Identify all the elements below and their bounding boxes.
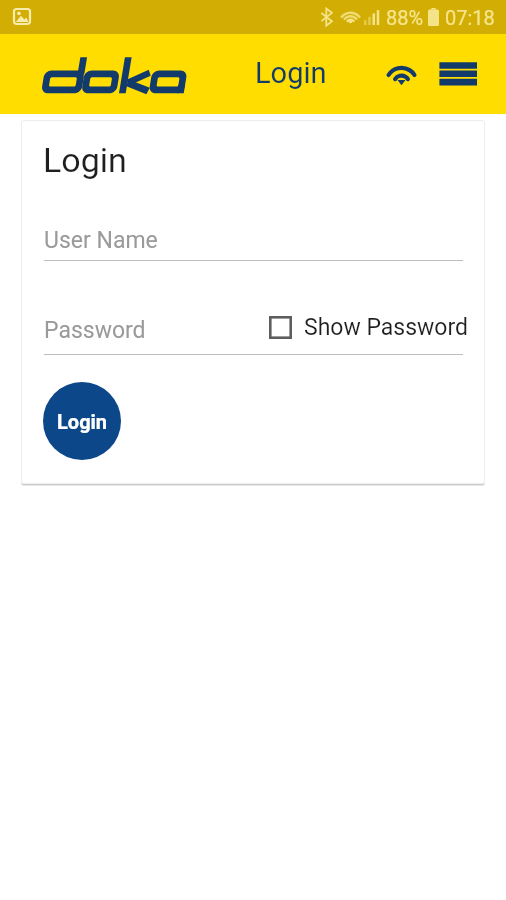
button[interactable]: Wifi (380, 53, 423, 96)
staticText: 07:18 (445, 6, 495, 29)
staticText: Login (255, 56, 327, 90)
staticText: Password (44, 317, 146, 344)
button[interactable]: Menu (436, 54, 484, 98)
staticText: User Name (44, 227, 158, 254)
button[interactable]: Show Password (269, 314, 469, 341)
staticText: Login (43, 140, 127, 180)
staticText: Show Password (304, 314, 469, 341)
staticText: Login (57, 410, 108, 433)
button[interactable]: Login (43, 382, 121, 460)
staticText: 88% (386, 6, 424, 29)
